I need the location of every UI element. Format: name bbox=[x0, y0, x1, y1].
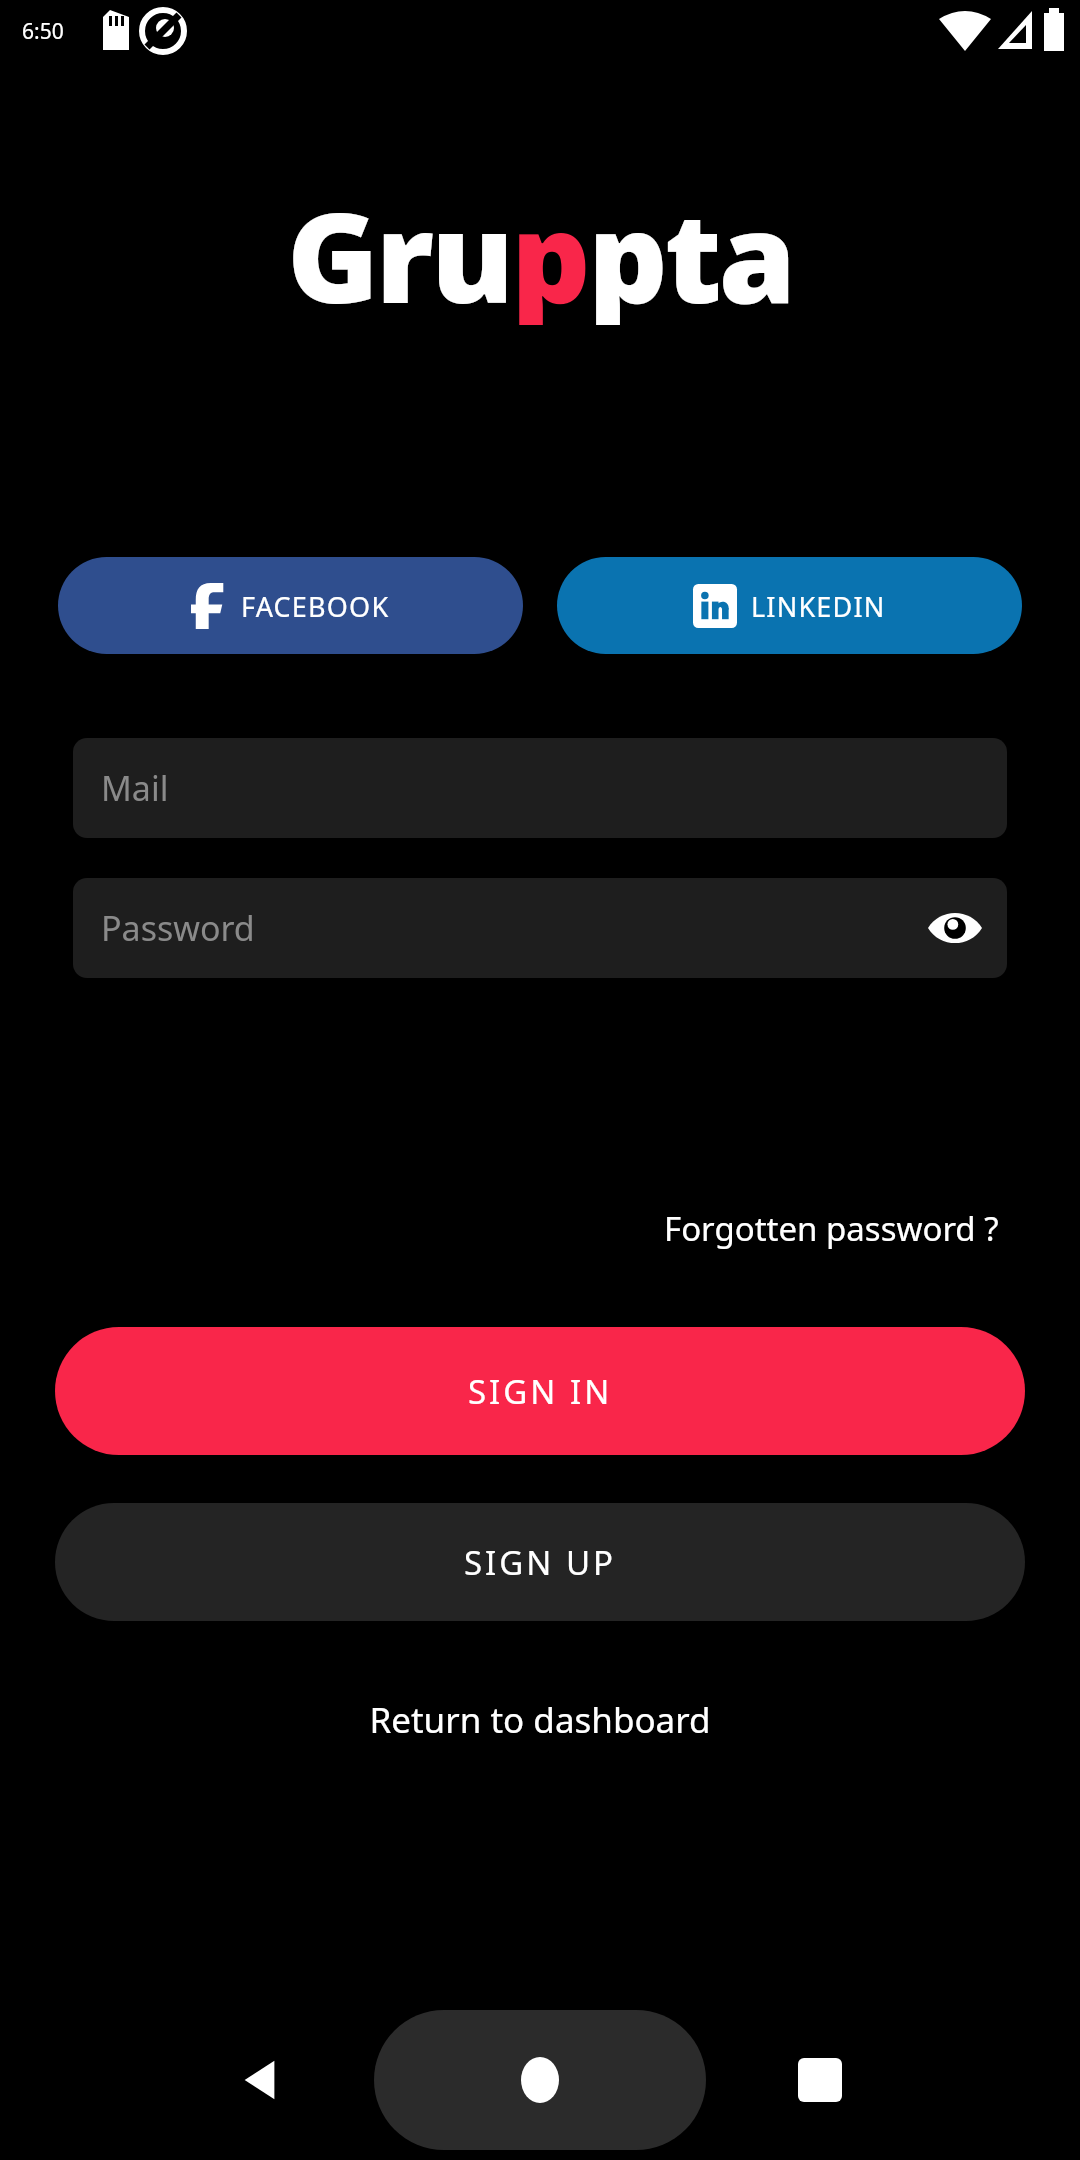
staticText: FACEBOOK bbox=[241, 588, 390, 625]
button[interactable]: FACEBOOK bbox=[58, 557, 523, 654]
button[interactable]: Show password bbox=[921, 894, 989, 962]
staticText: SIGN IN bbox=[468, 1369, 613, 1414]
staticText: Gru bbox=[287, 170, 511, 325]
button[interactable]: LINKEDIN bbox=[557, 557, 1022, 654]
staticText: 6:50 bbox=[22, 17, 64, 46]
staticText: p bbox=[511, 170, 588, 325]
staticText: Return to dashboard bbox=[369, 1696, 711, 1744]
staticText: SIGN UP bbox=[464, 1540, 617, 1585]
staticText: Mail bbox=[101, 765, 169, 811]
button[interactable]: Mail bbox=[73, 738, 1007, 838]
button[interactable]: Return to dashboard bbox=[359, 1686, 721, 1754]
button[interactable]: SIGN IN bbox=[55, 1327, 1025, 1455]
button[interactable]: SIGN UP bbox=[55, 1503, 1025, 1621]
button[interactable]: Home bbox=[374, 2010, 706, 2150]
staticText: Password bbox=[101, 905, 255, 951]
staticText: LINKEDIN bbox=[751, 588, 886, 625]
button[interactable]: Back bbox=[200, 2020, 320, 2140]
button[interactable]: Forgotten password ? bbox=[656, 1198, 1007, 1259]
staticText: pta bbox=[588, 170, 794, 325]
button[interactable]: Password bbox=[73, 878, 1007, 978]
button[interactable]: Recent apps bbox=[760, 2020, 880, 2140]
staticText: Forgotten password ? bbox=[664, 1206, 999, 1251]
